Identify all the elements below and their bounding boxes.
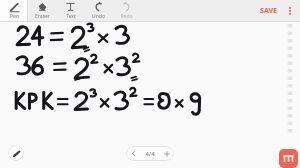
- staticText: Redo: [120, 13, 133, 20]
- staticText: Pen: [10, 13, 19, 20]
- button[interactable]: Undo: [84, 0, 112, 22]
- button[interactable]: Previous page: [126, 146, 141, 161]
- button[interactable]: Add page: [159, 146, 174, 161]
- button[interactable]: Eraser: [28, 0, 56, 22]
- button[interactable]: SAVE: [255, 0, 282, 22]
- staticText: SAVE: [260, 6, 277, 16]
- button[interactable]: More options: [282, 0, 298, 22]
- button[interactable]: App logo: [279, 149, 298, 168]
- button[interactable]: Pen tool: [8, 145, 24, 161]
- staticText: Eraser: [35, 13, 50, 20]
- button[interactable]: Pen: [0, 0, 28, 22]
- staticText: Undo: [92, 13, 105, 20]
- button[interactable]: Redo: [112, 0, 140, 22]
- button[interactable]: 4/4: [141, 150, 159, 158]
- button[interactable]: Text: [56, 0, 84, 22]
- staticText: 4/4: [145, 150, 155, 158]
- staticText: Text: [66, 13, 76, 20]
